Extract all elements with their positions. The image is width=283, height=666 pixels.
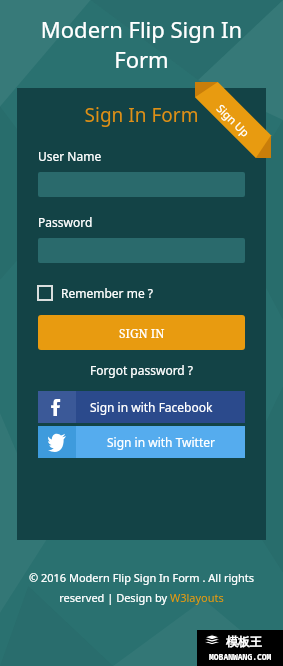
button[interactable]: SIGN IN [38,315,245,350]
button[interactable]: Sign Up [213,113,254,128]
button[interactable]: Remember me ? [38,285,153,301]
staticText: © 2016 Modern Flip Sign In Form . All ri… [22,570,261,605]
staticText: Sign in with Twitter [107,434,215,450]
button[interactable]: Forgot password ? [38,362,245,378]
staticText: Sign In Form [38,102,245,128]
staticText: Sign in with Facebook [90,399,213,415]
other: mobanwang.com watermark [197,630,283,666]
staticText: 模板王 [226,634,262,649]
staticText: User Name [38,148,102,164]
staticText: Sign Up [214,101,253,140]
staticText: MOBANWANG.COM [209,651,272,662]
button[interactable]: Sign in with Twitter [38,426,245,458]
staticText: SIGN IN [119,325,165,341]
staticText: Password [38,214,93,230]
button[interactable]: Sign in with Facebook [38,391,245,423]
staticText: Remember me ? [61,285,153,301]
staticText: Modern Flip Sign In Form [18,14,265,74]
